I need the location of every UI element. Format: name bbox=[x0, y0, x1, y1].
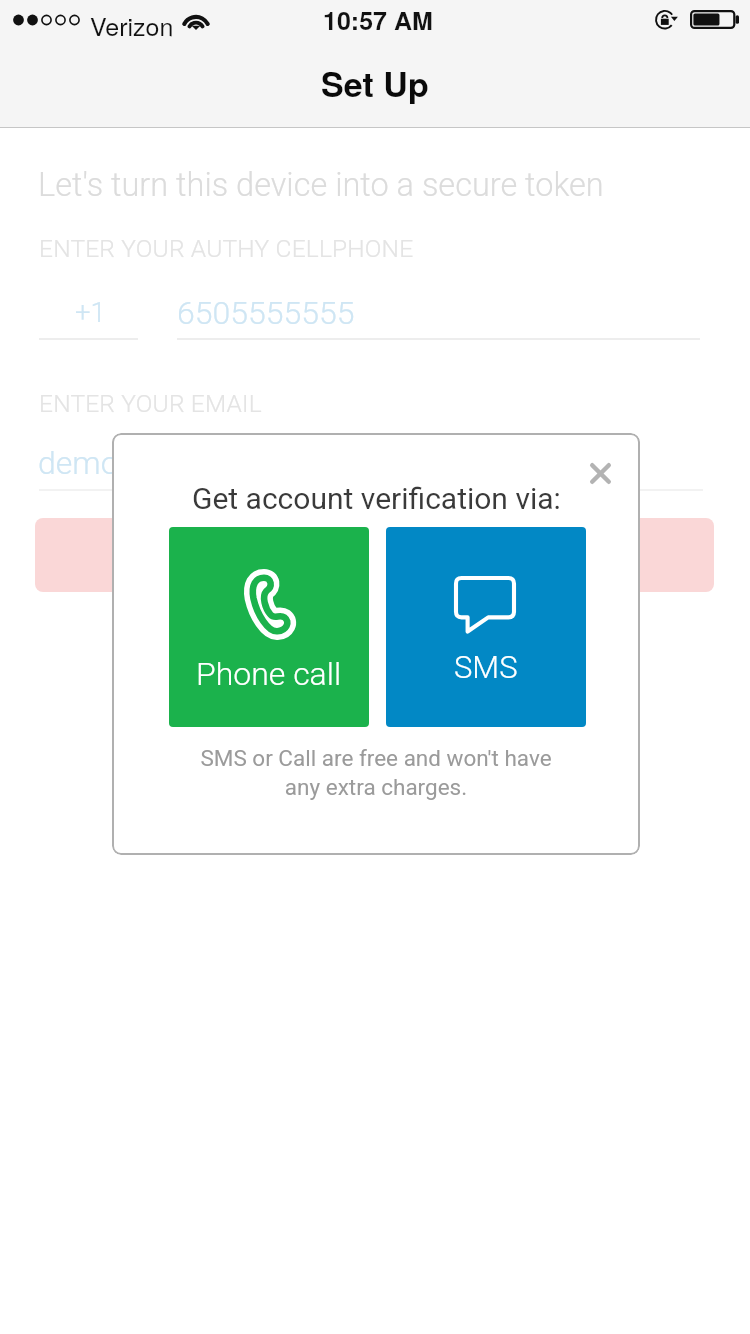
button[interactable]: SMS bbox=[386, 527, 586, 727]
button[interactable]: Close bbox=[574, 447, 626, 499]
button[interactable]: Phone call bbox=[169, 527, 369, 727]
staticText: 6505555555 bbox=[177, 294, 355, 332]
staticText: Set Up bbox=[321, 59, 429, 108]
staticText: SMS bbox=[454, 649, 518, 685]
staticText: SMS or Call are free and won't have any … bbox=[200, 745, 552, 800]
staticText: Phone call bbox=[196, 655, 342, 693]
staticText: ENTER YOUR AUTHY CELLPHONE bbox=[39, 234, 414, 263]
other: Rotation lock bbox=[654, 9, 680, 31]
staticText: Verizon bbox=[90, 7, 174, 43]
staticText: Get account verification via: bbox=[192, 481, 561, 516]
button[interactable]: Submit bbox=[35, 518, 714, 592]
staticText: Let's turn this device into a secure tok… bbox=[38, 166, 604, 204]
button[interactable]: Country code bbox=[39, 284, 138, 340]
staticText: ENTER YOUR EMAIL bbox=[39, 389, 262, 418]
button[interactable]: Email address bbox=[39, 434, 703, 491]
staticText: +1 bbox=[75, 296, 106, 328]
staticText: demo@authy.com bbox=[38, 444, 295, 482]
staticText: 10:57 AM bbox=[323, 2, 433, 38]
button[interactable]: Cellphone number bbox=[177, 284, 700, 340]
